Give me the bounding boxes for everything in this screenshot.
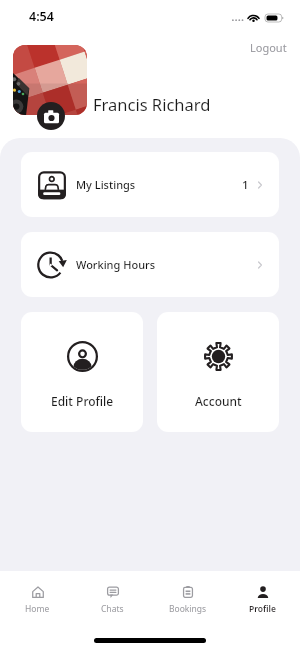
staticText: My Listings: [76, 177, 136, 192]
button[interactable]: Logout: [250, 40, 287, 55]
staticText: Edit Profile: [51, 393, 114, 409]
staticText: Home: [25, 603, 50, 615]
staticText: 4:54: [29, 8, 54, 25]
button[interactable]: Working Hours: [21, 232, 279, 297]
button[interactable]: Profile: [225, 571, 300, 621]
staticText: Account: [195, 393, 242, 409]
button[interactable]: Account: [157, 312, 279, 432]
staticText: Working Hours: [76, 257, 156, 272]
staticText: Profile: [249, 603, 276, 615]
button[interactable]: Change profile photo: [37, 102, 65, 130]
button[interactable]: Chats: [75, 571, 150, 621]
staticText: Chats: [101, 603, 124, 615]
staticText: 1: [242, 177, 249, 193]
staticText: Francis Richard: [93, 93, 211, 115]
button[interactable]: My Listings: [21, 152, 279, 217]
staticText: Bookings: [169, 603, 207, 615]
button[interactable]: Home: [0, 571, 75, 621]
button[interactable]: Bookings: [150, 571, 225, 621]
button[interactable]: Edit Profile: [21, 312, 143, 432]
